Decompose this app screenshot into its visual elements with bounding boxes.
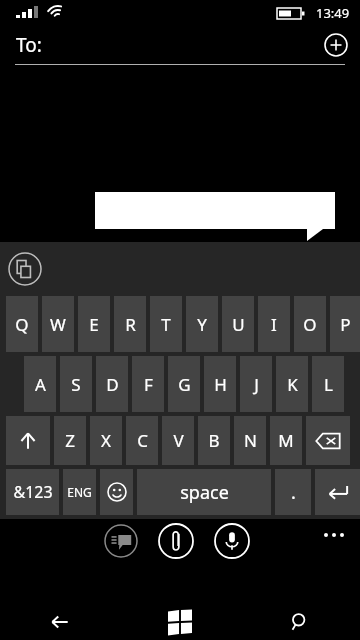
staticText: H	[214, 373, 227, 396]
button[interactable]: M	[270, 416, 302, 465]
staticText: E	[89, 313, 99, 336]
button[interactable]: space	[137, 469, 271, 515]
button[interactable]: key	[315, 469, 360, 515]
staticText: P	[340, 313, 351, 336]
staticText: A	[35, 373, 46, 396]
button[interactable]: V	[162, 416, 194, 465]
staticText: R	[125, 313, 136, 336]
button[interactable]: Back	[0, 604, 120, 640]
button[interactable]: U	[222, 296, 254, 352]
button[interactable]: H	[204, 356, 236, 412]
button[interactable]: K	[276, 356, 308, 412]
button[interactable]: S	[60, 356, 92, 412]
button[interactable]: D	[96, 356, 128, 412]
button[interactable]: Start	[120, 604, 240, 640]
button[interactable]: C	[126, 416, 158, 465]
button[interactable]: W	[42, 296, 74, 352]
staticText: X	[101, 429, 111, 452]
staticText: 13:49	[316, 4, 350, 22]
button[interactable]: X	[90, 416, 122, 465]
button[interactable]: T	[150, 296, 182, 352]
button[interactable]: Y	[186, 296, 218, 352]
staticText: L	[324, 373, 333, 396]
staticText: space	[180, 480, 229, 505]
staticText: ENG	[67, 484, 92, 500]
button[interactable]: Q	[6, 296, 38, 352]
staticText: &123	[13, 481, 53, 503]
button[interactable]: J	[240, 356, 272, 412]
button[interactable]: Z	[54, 416, 86, 465]
staticText: Q	[15, 313, 29, 336]
staticText: U	[232, 313, 245, 336]
staticText: Z	[65, 429, 75, 452]
button[interactable]: ENG	[63, 469, 96, 515]
button[interactable]: key	[100, 469, 133, 515]
button[interactable]: .	[275, 469, 311, 515]
staticText: M	[278, 429, 294, 452]
staticText: B	[208, 429, 220, 452]
staticText: K	[287, 373, 298, 396]
staticText: Y	[197, 313, 207, 336]
staticText: W	[50, 313, 66, 336]
staticText: D	[106, 373, 119, 396]
button[interactable]: E	[78, 296, 110, 352]
button[interactable]: Messages	[104, 524, 138, 558]
button[interactable]: Attach	[158, 523, 194, 559]
button[interactable]: To:	[0, 26, 360, 64]
button[interactable]: &123	[6, 469, 59, 515]
button[interactable]: key	[6, 416, 50, 465]
button[interactable]: O	[294, 296, 326, 352]
button[interactable]: L	[312, 356, 344, 412]
button[interactable]: Clipboard	[8, 252, 42, 286]
button[interactable]: F	[132, 356, 164, 412]
button[interactable]: More options	[320, 529, 348, 541]
staticText: F	[144, 373, 153, 396]
button[interactable]: key	[306, 416, 350, 465]
staticText: N	[244, 429, 257, 452]
staticText: V	[173, 429, 184, 452]
button[interactable]: P	[330, 296, 360, 352]
button[interactable]: A	[24, 356, 56, 412]
button[interactable]: B	[198, 416, 230, 465]
staticText: I	[271, 313, 277, 336]
staticText: .	[291, 480, 296, 505]
button[interactable]: Add contact	[324, 33, 348, 57]
button[interactable]: Search	[240, 604, 360, 640]
staticText: S	[71, 373, 81, 396]
staticText: O	[303, 313, 317, 336]
button[interactable]: G	[168, 356, 200, 412]
button[interactable]: I	[258, 296, 290, 352]
staticText: J	[254, 373, 259, 396]
button[interactable]: R	[114, 296, 146, 352]
staticText: C	[137, 429, 148, 452]
staticText: G	[178, 373, 191, 396]
staticText: To:	[16, 32, 42, 58]
button[interactable]: N	[234, 416, 266, 465]
staticText: T	[161, 313, 171, 336]
button[interactable]: Voice message	[214, 523, 250, 559]
